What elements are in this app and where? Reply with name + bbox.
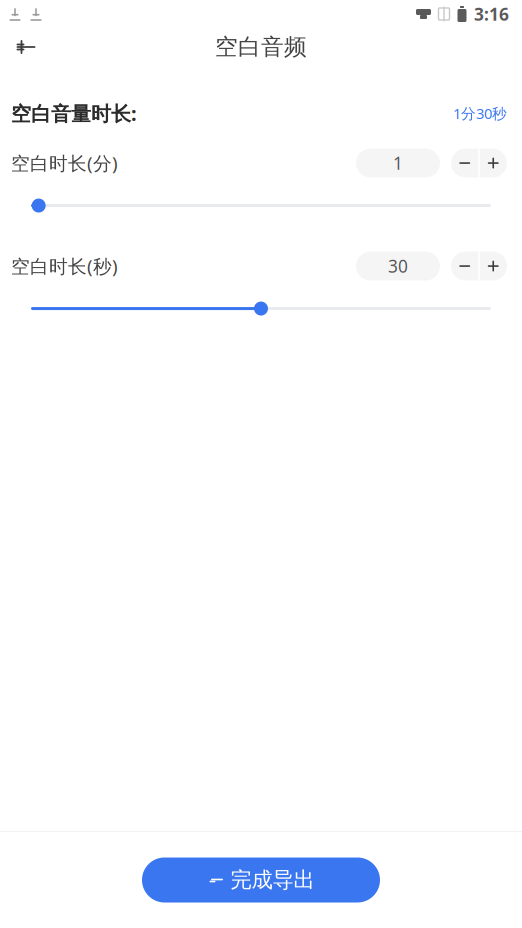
- staticText: 空白音频: [215, 33, 307, 61]
- button[interactable]: 返回: [0, 28, 52, 66]
- button[interactable]: 增加: [480, 149, 507, 178]
- staticText: 1分30秒: [453, 103, 507, 123]
- staticText: 3:16: [474, 2, 509, 25]
- staticText: 空白时长(秒): [11, 254, 118, 278]
- button[interactable]: 减少: [451, 252, 478, 281]
- staticText: 空白时长(分): [11, 151, 118, 175]
- staticText: 完成导出: [230, 867, 314, 893]
- staticText: 空白音量时长:: [11, 100, 137, 127]
- button[interactable]: 增加: [480, 252, 507, 281]
- staticText: 1: [393, 152, 403, 175]
- button[interactable]: 完成导出: [142, 857, 380, 902]
- button[interactable]: 减少: [451, 149, 478, 178]
- staticText: 30: [388, 255, 408, 278]
